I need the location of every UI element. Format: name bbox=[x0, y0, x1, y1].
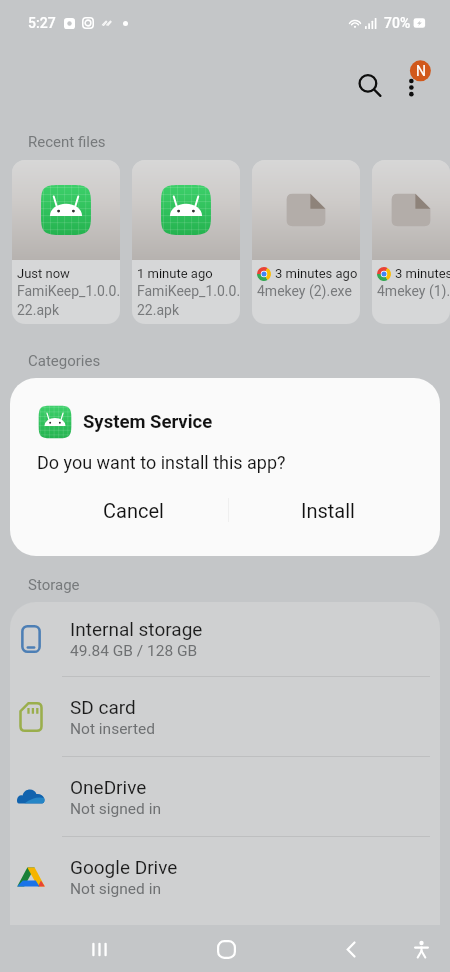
staticText: SD card bbox=[70, 696, 136, 718]
staticText: Do you want to install this app? bbox=[37, 452, 286, 473]
button[interactable]: 1 minute ago bbox=[132, 160, 240, 324]
staticText: Recent files bbox=[28, 133, 106, 151]
staticText: 70% bbox=[384, 15, 411, 31]
staticText: Categories bbox=[28, 352, 101, 370]
button[interactable]: More options bbox=[392, 64, 436, 108]
staticText: 49.84 GB / 128 GB bbox=[70, 642, 198, 660]
button[interactable]: Search bbox=[348, 64, 392, 108]
staticText: Cancel bbox=[103, 499, 164, 522]
staticText: Just now bbox=[17, 266, 70, 281]
staticText: 3 minutes ago bbox=[275, 266, 358, 281]
staticText: System Service bbox=[83, 411, 213, 433]
staticText: 4mekey (1). bbox=[377, 283, 450, 299]
button[interactable]: Cancel bbox=[10, 485, 228, 535]
button[interactable]: Internal storage bbox=[10, 602, 440, 676]
button[interactable]: OneDrive bbox=[10, 757, 440, 836]
staticText: Internal storage bbox=[70, 618, 203, 640]
staticText: Not signed in bbox=[70, 800, 161, 818]
staticText: 5:27 bbox=[28, 15, 56, 31]
staticText: Not signed in bbox=[70, 880, 161, 898]
staticText: OneDrive bbox=[70, 776, 147, 798]
staticText: Storage bbox=[28, 576, 80, 594]
staticText: Not inserted bbox=[70, 720, 156, 738]
button[interactable]: Back bbox=[329, 927, 373, 971]
staticText: Install bbox=[301, 499, 355, 522]
staticText: Google Drive bbox=[70, 856, 178, 878]
button[interactable]: Accessibility bbox=[399, 927, 443, 971]
button[interactable]: Google Drive bbox=[10, 837, 440, 916]
staticText: 3 minutes bbox=[395, 266, 450, 281]
staticText: 1 minute ago bbox=[137, 266, 213, 281]
staticText: 4mekey (2).exe bbox=[257, 283, 352, 299]
button[interactable]: 3 minutes bbox=[372, 160, 450, 324]
button[interactable]: SD card bbox=[10, 677, 440, 756]
button[interactable]: 3 minutes ago bbox=[252, 160, 360, 324]
staticText: N bbox=[416, 63, 426, 79]
button[interactable]: Home bbox=[204, 927, 248, 971]
button[interactable]: Just now bbox=[12, 160, 120, 324]
button[interactable]: Recents bbox=[77, 927, 121, 971]
staticText: FamiKeep_1.0.0. 22.apk bbox=[17, 283, 120, 318]
staticText: FamiKeep_1.0.0. 22.apk bbox=[137, 283, 240, 318]
button[interactable]: Install bbox=[228, 485, 440, 535]
